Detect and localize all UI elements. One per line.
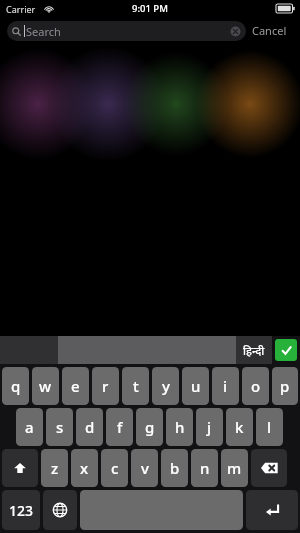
staticText: y <box>162 376 170 396</box>
button[interactable]: d <box>76 408 103 446</box>
staticText: h <box>175 417 185 437</box>
staticText: d <box>85 417 95 437</box>
staticText: q <box>11 376 21 396</box>
staticText: v <box>141 458 149 478</box>
button[interactable]: t <box>122 367 149 405</box>
button[interactable]: u <box>182 367 209 405</box>
staticText: i <box>223 376 228 396</box>
staticText: Carrier <box>6 3 36 15</box>
button[interactable]: Accept <box>275 339 297 361</box>
button[interactable]: w <box>32 367 59 405</box>
button[interactable]: g <box>136 408 163 446</box>
staticText: u <box>191 376 201 396</box>
button[interactable]: Shift <box>2 449 38 487</box>
staticText: w <box>39 376 52 396</box>
button[interactable]: a <box>16 408 43 446</box>
button[interactable]: Clear search <box>230 26 241 37</box>
staticText: k <box>235 417 244 437</box>
button[interactable]: j <box>196 408 223 446</box>
staticText: x <box>80 458 89 478</box>
staticText: m <box>227 458 242 478</box>
staticText: 9:01 PM <box>132 2 168 15</box>
button[interactable]: Search <box>7 21 246 41</box>
button[interactable]: m <box>221 449 248 487</box>
button[interactable]: 123 <box>2 490 40 530</box>
staticText: f <box>117 417 123 437</box>
staticText: o <box>251 376 261 396</box>
button[interactable]: k <box>226 408 253 446</box>
button[interactable]: n <box>191 449 218 487</box>
staticText: s <box>56 417 64 437</box>
button[interactable]: r <box>92 367 119 405</box>
staticText: हिन्दी <box>243 343 265 358</box>
staticText: t <box>133 376 139 396</box>
staticText: a <box>25 417 34 437</box>
staticText: e <box>71 376 80 396</box>
button[interactable]: i <box>212 367 239 405</box>
button[interactable]: Backspace <box>251 449 287 487</box>
staticText: Cancel <box>252 23 287 38</box>
button[interactable]: v <box>131 449 158 487</box>
staticText: 123 <box>9 501 34 520</box>
button[interactable]: b <box>161 449 188 487</box>
staticText: l <box>267 417 272 437</box>
button[interactable]: h <box>166 408 193 446</box>
staticText: j <box>207 417 212 437</box>
button[interactable]: Space <box>80 490 243 530</box>
staticText: b <box>170 458 180 478</box>
button[interactable]: Return <box>246 490 298 530</box>
staticText: n <box>200 458 210 478</box>
button[interactable]: l <box>256 408 283 446</box>
button[interactable]: o <box>242 367 269 405</box>
button[interactable]: c <box>101 449 128 487</box>
staticText: r <box>102 376 109 396</box>
button[interactable]: हिन्दी <box>236 336 272 364</box>
button[interactable]: p <box>272 367 298 405</box>
staticText: g <box>145 417 155 437</box>
button[interactable]: Cancel <box>246 20 293 41</box>
button[interactable]: q <box>2 367 29 405</box>
button[interactable]: y <box>152 367 179 405</box>
button[interactable]: z <box>41 449 68 487</box>
button[interactable]: x <box>71 449 98 487</box>
button[interactable]: s <box>46 408 73 446</box>
staticText: c <box>111 458 119 478</box>
button[interactable]: f <box>106 408 133 446</box>
staticText: p <box>280 376 290 396</box>
button[interactable]: e <box>62 367 89 405</box>
button[interactable]: Switch language <box>43 490 77 530</box>
staticText: z <box>51 458 59 478</box>
staticText: Search <box>26 24 230 39</box>
